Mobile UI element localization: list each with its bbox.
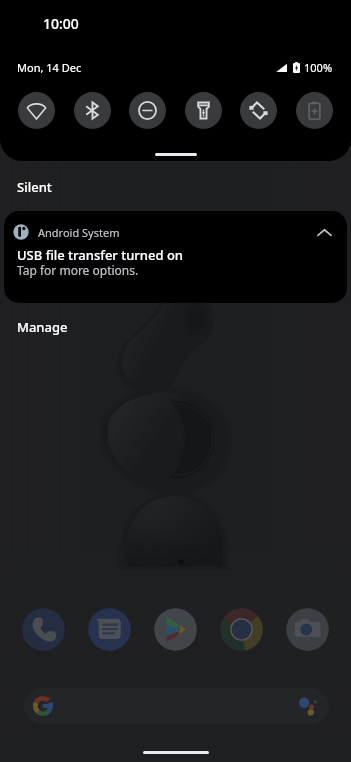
button[interactable]: Wi-Fi (18, 92, 55, 129)
staticText: Silent (17, 178, 52, 196)
staticText: 10:00 (43, 14, 79, 33)
button[interactable]: Manage (17, 318, 68, 336)
button[interactable]: Play Store (154, 608, 197, 651)
button[interactable]: Phone (22, 608, 65, 651)
button[interactable]: Flashlight (185, 92, 222, 129)
staticText: Android System (38, 225, 120, 240)
button[interactable]: Battery saver (296, 92, 333, 129)
button[interactable]: Search (24, 688, 329, 724)
button[interactable]: Bluetooth (74, 92, 111, 129)
button[interactable]: Auto rotate (240, 92, 277, 129)
button[interactable]: Android System (4, 211, 347, 303)
staticText: Tap for more options. (17, 262, 139, 278)
staticText: USB file transfer turned on (17, 246, 183, 264)
button[interactable]: Chrome (220, 608, 263, 651)
button[interactable]: Messages (88, 608, 131, 651)
staticText: Mon, 14 Dec (17, 60, 82, 75)
staticText: 100% (304, 60, 333, 75)
button[interactable]: Collapse (313, 221, 335, 243)
button[interactable]: Camera (286, 608, 329, 651)
button[interactable]: Do not disturb (129, 92, 166, 129)
